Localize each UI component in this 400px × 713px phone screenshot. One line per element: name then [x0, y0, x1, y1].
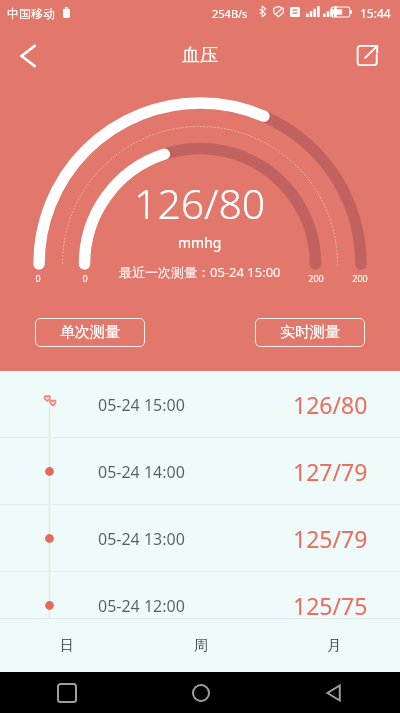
staticText: 中国移动 — [7, 6, 55, 21]
staticText: 实时测量 — [280, 323, 340, 342]
button[interactable]: Back — [0, 24, 56, 87]
staticText: 05-24 14:00 — [98, 461, 185, 483]
button[interactable]: Home — [184, 676, 218, 710]
button[interactable]: Back — [317, 676, 351, 710]
staticText: 125/79 — [293, 523, 368, 554]
staticText: mmhg — [178, 233, 222, 252]
staticText: 周 — [194, 637, 208, 655]
button[interactable]: 周 — [134, 619, 267, 672]
staticText: 最近一次测量：05-24 15:00 — [119, 263, 281, 281]
staticText: 0 — [82, 272, 88, 284]
staticText: 月 — [327, 637, 341, 655]
staticText: 126/80 — [293, 389, 368, 420]
staticText: 血压 — [182, 44, 218, 67]
staticText: 125/75 — [293, 590, 368, 621]
button[interactable]: 05-24 13:00 — [0, 505, 400, 572]
button[interactable]: Share — [344, 24, 400, 87]
staticText: 127/79 — [293, 456, 368, 487]
staticText: 05-24 12:00 — [98, 595, 185, 617]
staticText: 单次测量 — [60, 323, 120, 342]
button[interactable]: 实时测量 — [255, 318, 365, 347]
button[interactable]: 月 — [267, 619, 400, 672]
staticText: 126/80 — [134, 175, 266, 231]
staticText: 254B/s — [212, 6, 248, 21]
staticText: 0 — [35, 272, 41, 284]
button[interactable]: 单次测量 — [35, 318, 145, 347]
staticText: 200 — [308, 272, 324, 284]
button[interactable]: 05-24 14:00 — [0, 438, 400, 505]
staticText: 15:44 — [360, 5, 391, 21]
staticText: 200 — [352, 272, 368, 284]
button[interactable]: Recents — [50, 676, 84, 710]
staticText: 日 — [60, 637, 74, 655]
button[interactable]: 05-24 15:00 — [0, 371, 400, 438]
staticText: 05-24 15:00 — [98, 394, 185, 416]
staticText: 05-24 13:00 — [98, 528, 185, 550]
button[interactable]: 05-24 12:00 — [0, 572, 400, 639]
button[interactable]: 日 — [0, 619, 134, 672]
